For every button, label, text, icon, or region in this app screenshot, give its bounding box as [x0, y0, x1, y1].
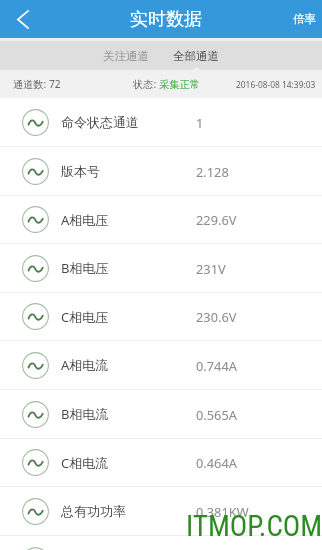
button[interactable]: A相电压 — [0, 196, 322, 243]
staticText: 2016-08-08 14:39:03 — [236, 79, 316, 90]
button[interactable]: C相电压 — [0, 293, 322, 340]
button[interactable]: 关注通道 — [91, 43, 161, 69]
button[interactable]: 全部通道 — [161, 43, 231, 69]
staticText: 通道数: 72 — [13, 77, 61, 91]
staticText: B相电压 — [61, 259, 109, 277]
button[interactable]: 倍率 — [283, 0, 322, 38]
button[interactable]: B相电流 — [0, 390, 322, 438]
staticText: 0.744A — [196, 357, 237, 374]
staticText: A相电流 — [61, 356, 109, 374]
staticText: B相电流 — [61, 405, 109, 423]
staticText: 倍率 — [293, 12, 316, 26]
staticText: 0.381KW — [196, 503, 249, 520]
staticText: 采集正常 — [159, 78, 200, 91]
button[interactable]: 命令状态通道 — [0, 98, 322, 146]
staticText: 230.6V — [196, 308, 237, 325]
staticText: 总有功功率 — [61, 503, 126, 519]
staticText: 全部通道 — [173, 49, 219, 63]
staticText: 状态: — [133, 77, 159, 91]
staticText: C相电流 — [61, 454, 109, 472]
staticText: 231V — [196, 260, 226, 277]
staticText: 229.6V — [196, 211, 237, 228]
staticText: 关注通道 — [103, 49, 149, 63]
button[interactable]: 总有功功率 — [0, 487, 322, 535]
staticText: 实时数据 — [130, 8, 202, 31]
button[interactable]: Back — [0, 0, 46, 38]
button[interactable]: C相电流 — [0, 439, 322, 486]
staticText: 0.565A — [196, 406, 237, 423]
staticText: ITMOP.COM — [186, 509, 322, 543]
button[interactable]: 版本号 — [0, 147, 322, 195]
staticText: A相电压 — [61, 211, 109, 229]
button[interactable]: 总无功功率 — [0, 536, 322, 550]
button[interactable]: A相电流 — [0, 341, 322, 389]
staticText: 2.128 — [196, 163, 229, 180]
button[interactable]: B相电压 — [0, 244, 322, 292]
staticText: 命令状态通道 — [61, 114, 139, 130]
staticText: 版本号 — [61, 163, 100, 179]
staticText: C相电压 — [61, 308, 109, 326]
staticText: 0.464A — [196, 454, 237, 471]
staticText: 1 — [196, 114, 204, 131]
